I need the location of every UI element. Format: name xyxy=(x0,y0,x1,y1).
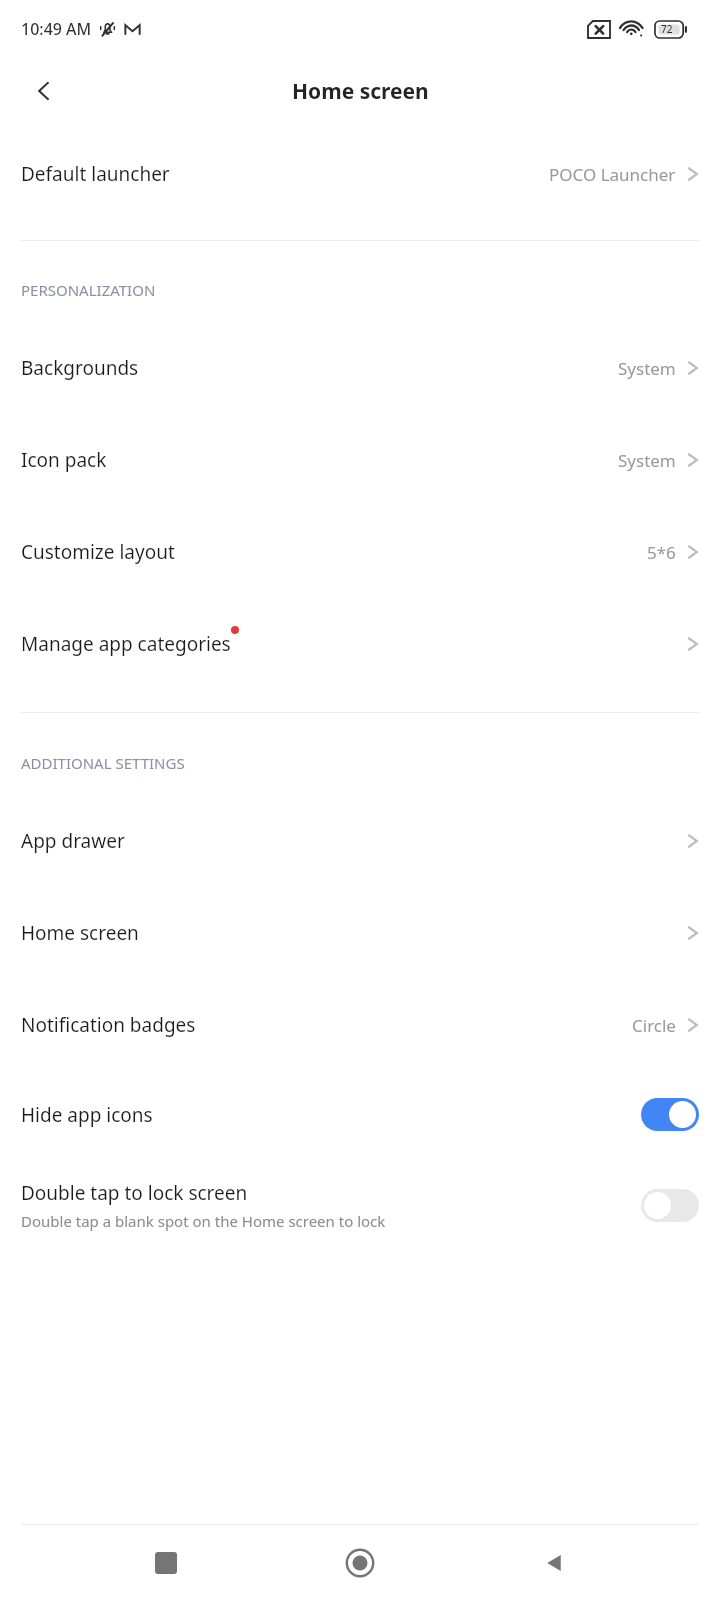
button[interactable]: Off xyxy=(641,1189,699,1222)
staticText: App drawer xyxy=(21,828,125,854)
button[interactable]: Backgrounds xyxy=(0,348,720,388)
staticText: 10:49 AM xyxy=(21,18,92,40)
staticText: Customize layout xyxy=(21,539,175,565)
staticText: Default launcher xyxy=(21,161,170,187)
button[interactable]: Hide app icons xyxy=(0,1088,720,1141)
staticText: POCO Launcher xyxy=(549,163,676,186)
staticText: Icon pack xyxy=(21,447,107,473)
button[interactable]: Recents xyxy=(138,1535,194,1591)
button[interactable]: Icon pack xyxy=(0,440,720,480)
button[interactable]: Default launcher xyxy=(0,154,720,194)
staticText: Hide app icons xyxy=(21,1102,153,1128)
staticText: Circle xyxy=(632,1014,676,1037)
staticText: Double tap a blank spot on the Home scre… xyxy=(21,1211,386,1231)
button[interactable]: Manage app categories xyxy=(0,624,720,664)
button[interactable]: Notification badges xyxy=(0,1005,720,1045)
button[interactable]: App drawer xyxy=(0,821,720,861)
button[interactable]: Double tap to lock screen xyxy=(0,1170,720,1241)
staticText: Home screen xyxy=(292,77,429,106)
button[interactable]: Back xyxy=(22,69,66,113)
staticText: System xyxy=(618,357,676,380)
button[interactable]: Home xyxy=(332,1535,388,1591)
button[interactable]: Home screen xyxy=(0,913,720,953)
staticText: Double tap to lock screen xyxy=(21,1180,248,1206)
staticText: PERSONALIZATION xyxy=(21,280,156,300)
staticText: ADDITIONAL SETTINGS xyxy=(21,753,185,773)
staticText: Notification badges xyxy=(21,1012,196,1038)
staticText: System xyxy=(618,449,676,472)
staticText: Manage app categories xyxy=(21,631,231,657)
button[interactable]: Back xyxy=(526,1535,582,1591)
staticText: 5*6 xyxy=(647,541,676,564)
button[interactable]: Customize layout xyxy=(0,532,720,572)
staticText: Home screen xyxy=(21,920,139,946)
button[interactable]: On xyxy=(641,1098,699,1131)
staticText: Backgrounds xyxy=(21,355,139,381)
staticText: 72 xyxy=(661,22,673,36)
